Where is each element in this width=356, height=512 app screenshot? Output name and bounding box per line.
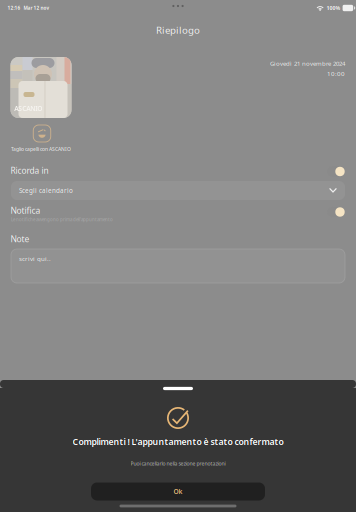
staticText: Riepilogo [156,23,200,37]
staticText: 100% [327,4,341,12]
staticText: ASCANIO [14,104,42,113]
staticText: Complimenti ! L'appuntamento è stato con… [72,436,283,447]
staticText: Giovedì 21 novembre 2024 [270,59,345,68]
staticText: 10:00 [327,69,345,78]
staticText: Ricorda in [10,165,48,176]
button[interactable]: Scegli calendario [11,181,345,200]
staticText: Mar 12 nov [23,5,49,11]
button[interactable]: Ok [91,482,265,500]
staticText: Scegli calendario [19,186,73,195]
button[interactable]: Attiva [327,207,345,217]
button[interactable]: Attiva [327,166,345,177]
staticText: Le notifiche avvengono prima dell'appunt… [11,216,113,222]
staticText: Puoi cancellarlo nella sezione prenotazi… [130,460,225,467]
staticText: Ok [173,487,182,496]
staticText: Taglio capelli con ASCANIO [11,146,71,152]
staticText: Note [10,233,29,245]
staticText: 12:16 [7,5,20,11]
staticText: scrivi qui.. [19,254,51,263]
staticText: Notifica [10,205,40,216]
